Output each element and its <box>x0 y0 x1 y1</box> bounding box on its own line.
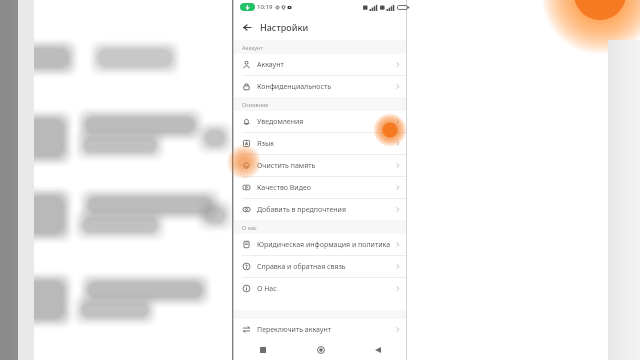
button[interactable]: Последние приложения <box>234 340 292 360</box>
staticText: Аккаунт <box>257 60 396 70</box>
button[interactable]: Справка и обратная связь <box>234 256 406 277</box>
staticText: Переключить аккаунт <box>257 325 396 335</box>
button[interactable]: Очистить память <box>234 155 406 176</box>
staticText: 10:19 <box>257 3 273 11</box>
staticText: Уведомления <box>257 117 396 127</box>
button[interactable]: Качество Видео <box>234 177 406 198</box>
button[interactable]: Переключить аккаунт <box>234 319 406 340</box>
button[interactable]: Уведомления <box>234 111 406 132</box>
staticText: Добавить в предпочтения <box>257 205 396 215</box>
staticText: О нас <box>242 224 257 231</box>
staticText: Конфиденциальность <box>257 82 396 92</box>
button[interactable]: Язык <box>234 133 406 154</box>
staticText: О Нас <box>257 284 396 294</box>
button[interactable]: О Нас <box>234 278 406 299</box>
staticText: Очистить память <box>257 161 396 171</box>
button[interactable]: Конфиденциальность <box>234 76 406 97</box>
button[interactable]: Аккаунт <box>234 54 406 75</box>
staticText: Настройки <box>260 21 309 33</box>
staticText: Язык <box>257 139 396 149</box>
button[interactable]: Юридическая информация и политика <box>234 234 406 255</box>
button[interactable]: Назад <box>349 340 406 360</box>
button[interactable]: Назад <box>234 14 260 40</box>
button[interactable]: Домой <box>292 340 349 360</box>
staticText: Основное <box>242 101 269 108</box>
staticText: Юридическая информация и политика <box>257 240 396 250</box>
staticText: Качество Видео <box>257 183 396 193</box>
staticText: Справка и обратная связь <box>257 262 396 272</box>
staticText: Аккаунт <box>242 44 263 51</box>
button[interactable]: Добавить в предпочтения <box>234 199 406 220</box>
